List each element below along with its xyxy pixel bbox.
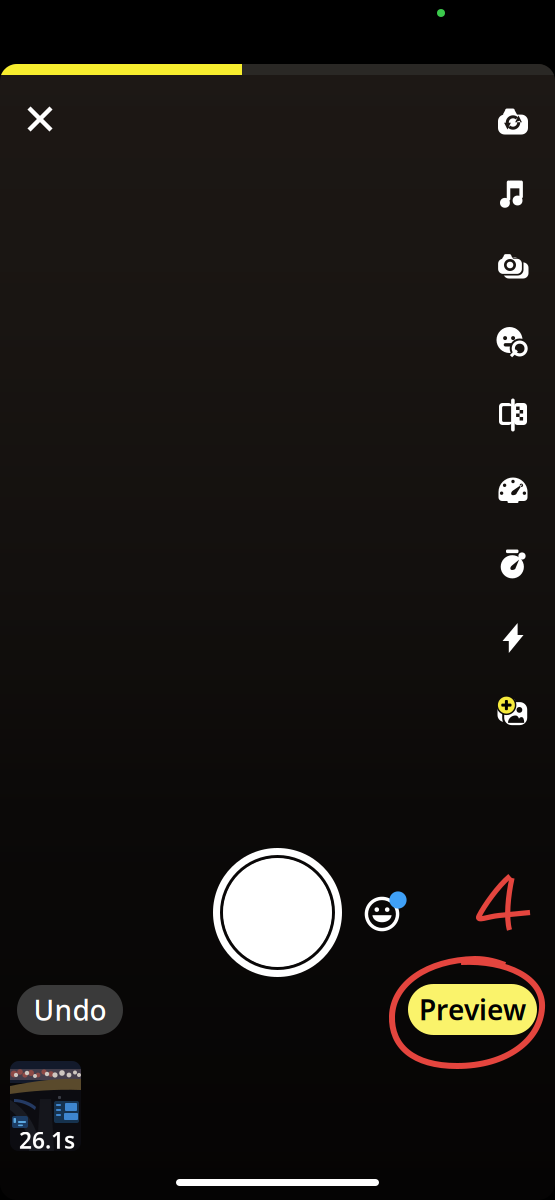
button[interactable]: Flip camera bbox=[485, 93, 541, 149]
staticText: Undo bbox=[33, 991, 106, 1029]
button[interactable]: Clip, 26.1 seconds bbox=[10, 1061, 81, 1151]
button[interactable]: Timer bbox=[485, 536, 541, 592]
staticText: 26.1s bbox=[19, 1125, 75, 1155]
button[interactable]: Close bbox=[14, 93, 66, 145]
button[interactable]: Stickers bbox=[359, 888, 411, 936]
button[interactable]: Flash bbox=[485, 610, 541, 666]
button[interactable]: Music bbox=[485, 167, 541, 223]
button[interactable]: Capture bbox=[213, 848, 342, 977]
button[interactable]: Multi snap bbox=[485, 237, 541, 293]
button[interactable]: Lenses bbox=[485, 314, 541, 370]
staticText: Preview bbox=[419, 991, 526, 1028]
button[interactable]: Green screen bbox=[485, 387, 541, 443]
button[interactable]: Preview bbox=[408, 984, 537, 1035]
button[interactable]: Undo bbox=[17, 985, 123, 1035]
button[interactable]: Speed bbox=[485, 462, 541, 518]
button[interactable]: Add media bbox=[485, 684, 541, 740]
